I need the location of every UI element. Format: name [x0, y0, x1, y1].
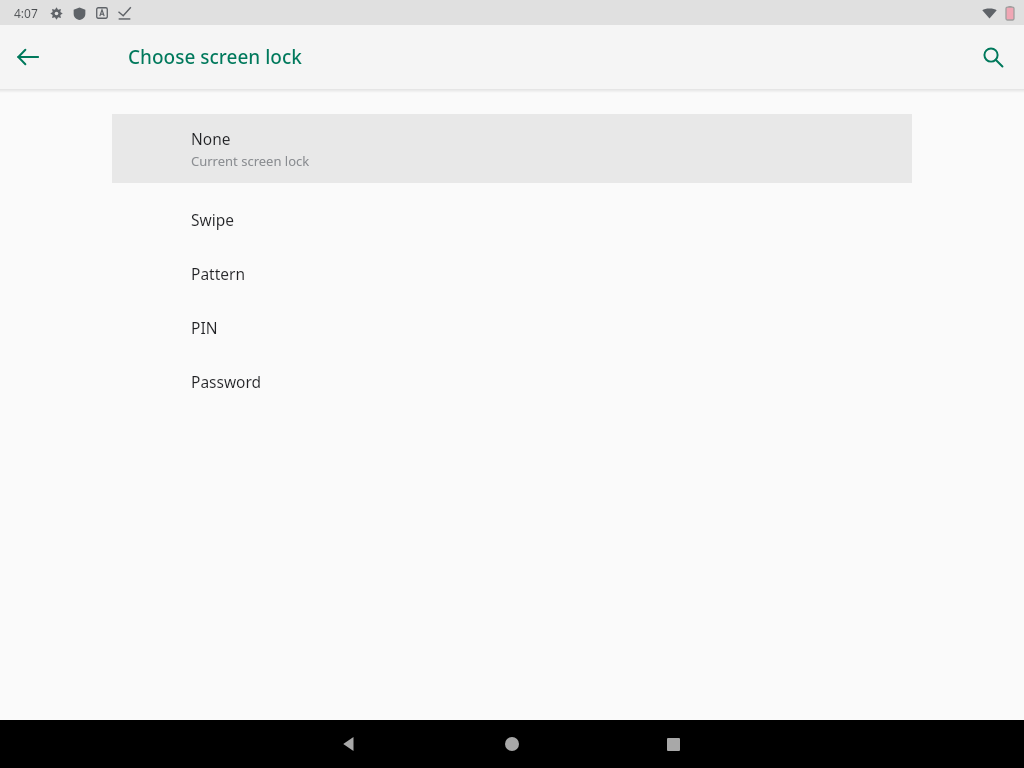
staticText: 4:07 [14, 5, 38, 21]
staticText: Current screen lock [191, 152, 310, 170]
staticText: Password [191, 371, 262, 392]
button[interactable]: PIN [0, 300, 1024, 354]
button[interactable]: Pattern [0, 246, 1024, 300]
button[interactable]: Navigate up [4, 33, 52, 81]
button[interactable]: Back [325, 720, 373, 768]
staticText: PIN [191, 317, 218, 338]
button[interactable]: Home [488, 720, 536, 768]
button[interactable]: Swipe [0, 192, 1024, 246]
button[interactable]: None [112, 114, 912, 183]
staticText: Swipe [191, 209, 234, 230]
staticText: None [191, 128, 231, 149]
button[interactable]: Search [969, 33, 1017, 81]
staticText: Choose screen lock [128, 44, 302, 70]
button[interactable]: Password [0, 354, 1024, 408]
staticText: Pattern [191, 263, 245, 284]
button[interactable]: Recent apps [649, 720, 697, 768]
